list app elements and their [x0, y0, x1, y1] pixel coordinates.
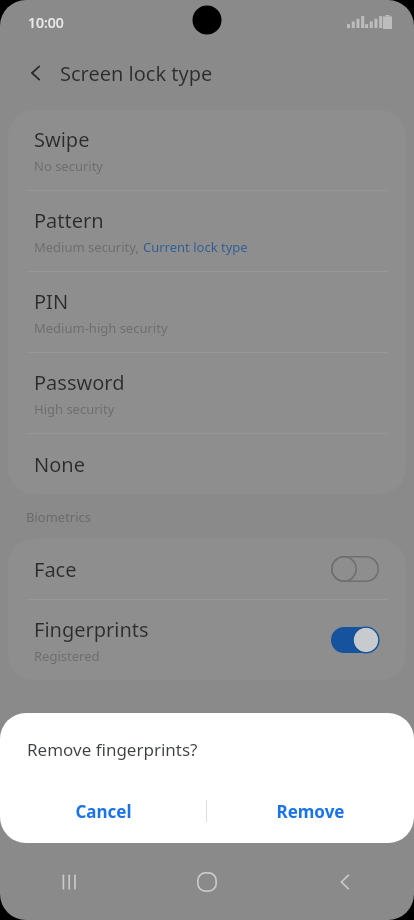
- button[interactable]: Face: [8, 539, 406, 599]
- button[interactable]: Toggle off: [326, 549, 384, 589]
- button[interactable]: Fingerprints: [8, 600, 406, 680]
- button[interactable]: Swipe: [8, 110, 406, 190]
- staticText: Face: [34, 556, 77, 583]
- button[interactable]: Toggle on: [326, 620, 384, 660]
- staticText: Registered: [34, 647, 100, 665]
- staticText: Pattern: [34, 207, 104, 234]
- button[interactable]: Cancel: [0, 785, 206, 837]
- button[interactable]: Remove: [207, 785, 414, 837]
- staticText: High security: [34, 400, 115, 418]
- button[interactable]: PIN: [8, 272, 406, 352]
- staticText: Medium-high security: [34, 319, 168, 337]
- staticText: Biometrics: [26, 508, 92, 526]
- staticText: Cancel: [75, 800, 132, 823]
- staticText: PIN: [34, 288, 69, 315]
- staticText: Medium security,: [34, 238, 143, 256]
- button[interactable]: Home: [138, 854, 276, 910]
- staticText: No security: [34, 157, 104, 175]
- button[interactable]: Pattern: [8, 191, 406, 271]
- staticText: Password: [34, 369, 125, 396]
- staticText: Current lock type: [143, 238, 248, 256]
- button[interactable]: Back: [276, 854, 414, 910]
- staticText: None: [34, 451, 85, 478]
- staticText: Swipe: [34, 126, 90, 153]
- staticText: Fingerprints: [34, 616, 149, 643]
- staticText: Screen lock type: [60, 60, 213, 87]
- button[interactable]: Back: [14, 51, 58, 95]
- button[interactable]: Password: [8, 353, 406, 433]
- staticText: 10:00: [28, 13, 64, 32]
- button[interactable]: None: [8, 434, 406, 494]
- staticText: Remove fingerprints?: [27, 738, 198, 761]
- staticText: Remove: [276, 800, 345, 823]
- button[interactable]: Recents: [0, 854, 138, 910]
